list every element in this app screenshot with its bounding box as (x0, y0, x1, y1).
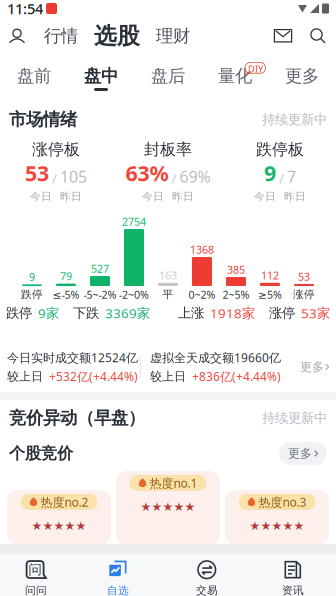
staticText: 9 (264, 159, 276, 187)
staticText: 更多 (285, 65, 319, 87)
button[interactable]: 盘前 (0, 55, 67, 97)
staticText: ★★★★★ (31, 519, 86, 533)
staticText: 79 (60, 269, 72, 283)
staticText: 持续更新中 (262, 410, 327, 426)
staticText: 昨日 (172, 190, 194, 203)
staticText: 较上日 (7, 369, 43, 384)
staticText: DIY (248, 63, 263, 75)
staticText: ★★★★★ (140, 500, 195, 514)
staticText: 385 (227, 262, 245, 277)
button[interactable]: Messages (270, 23, 296, 49)
staticText: 今日 (254, 190, 276, 203)
staticText: 527 (91, 261, 109, 276)
staticText: ≤-5% (52, 287, 79, 302)
staticText: 更多 (288, 446, 312, 461)
staticText: 理财 (156, 25, 190, 47)
staticText: 交易 (196, 584, 218, 596)
button[interactable]: 交易 (164, 554, 250, 596)
staticText: 问问 (25, 584, 47, 596)
staticText: 热度no.1 (149, 475, 197, 491)
staticText: 量化 (218, 65, 252, 87)
staticText: 盘前 (17, 65, 51, 87)
staticText: 2754 (122, 214, 146, 229)
staticText: / (168, 169, 179, 187)
staticText: 虚拟全天成交额19660亿 (150, 350, 281, 365)
staticText: -5~-2% (83, 287, 116, 302)
staticText: 更多 (300, 360, 324, 374)
staticText: +836亿(+4.44%) (192, 368, 281, 384)
staticText: 封板率 (144, 140, 192, 159)
staticText: 持续更新中 (262, 111, 327, 128)
button[interactable]: 理财 (156, 23, 190, 49)
staticText: 53 (298, 269, 310, 284)
staticText: 9家 (32, 304, 59, 322)
button[interactable]: 更多 (268, 55, 335, 97)
button[interactable]: 选股 (94, 23, 140, 49)
staticText: 今日 (142, 190, 164, 203)
staticText: 资讯 (282, 584, 304, 596)
staticText: 选股 (94, 22, 140, 50)
staticText: 竞价异动（早盘） (9, 407, 145, 429)
staticText: +532亿(+4.44%) (49, 368, 138, 384)
staticText: 跌停 (6, 305, 32, 321)
staticText: 9 (29, 270, 35, 284)
button[interactable]: 热度no.3 (225, 490, 329, 544)
staticText: 53家 (295, 304, 330, 322)
button[interactable]: 量化 (201, 55, 268, 97)
staticText: 今日实时成交额12524亿 (7, 350, 138, 365)
button[interactable]: 热度no.2 (7, 490, 111, 544)
staticText: 热度no.3 (258, 494, 306, 510)
staticText: 53 (25, 159, 49, 187)
staticText: 市场情绪 (9, 109, 77, 130)
button[interactable]: 更多 (279, 442, 327, 465)
button[interactable]: 自选 (72, 554, 164, 596)
button[interactable]: 问 (0, 554, 72, 596)
staticText: 行情 (44, 25, 78, 47)
staticText: ≥5% (258, 287, 282, 302)
staticText: 昨日 (60, 190, 82, 203)
staticText: 涨停 (293, 288, 315, 301)
button[interactable]: 更多 (300, 360, 329, 374)
staticText: 112 (261, 268, 279, 282)
staticText: 0~2% (188, 287, 215, 302)
button[interactable]: 盘中 (67, 55, 134, 97)
staticText: 盘中 (84, 65, 118, 87)
staticText: 11:54 (7, 0, 43, 18)
staticText: 7 (287, 166, 296, 187)
staticText: 69% (179, 166, 210, 187)
staticText: -2~0% (119, 287, 149, 302)
button[interactable]: Search (306, 23, 330, 49)
staticText: 平 (162, 288, 173, 301)
staticText: 跌停板 (256, 140, 304, 159)
staticText: 163 (159, 268, 177, 282)
staticText: 较上日 (150, 369, 186, 384)
button[interactable]: Profile (3, 23, 31, 49)
staticText: 上涨 (178, 305, 204, 321)
staticText: 2~5% (222, 287, 249, 302)
staticText: 个股竞价 (9, 444, 73, 463)
staticText: 热度no.2 (40, 494, 88, 510)
staticText: / (49, 169, 60, 187)
staticText: ★★★★★ (249, 519, 304, 533)
staticText: 问 (28, 561, 41, 578)
staticText: 1918家 (204, 304, 255, 322)
button[interactable]: 资讯 (250, 554, 336, 596)
staticText: 105 (60, 166, 87, 187)
staticText: 涨停 (269, 305, 295, 321)
staticText: 涨停板 (32, 140, 80, 159)
staticText: 63% (125, 159, 168, 187)
button[interactable]: 热度no.1 (116, 471, 220, 544)
staticText: 1368 (190, 242, 214, 257)
staticText: 昨日 (284, 190, 306, 203)
button[interactable]: 行情 (44, 23, 78, 49)
staticText: 今日 (30, 190, 52, 203)
staticText: 自选 (107, 584, 129, 596)
staticText: 下跌 (73, 305, 99, 321)
staticText: / (276, 169, 287, 187)
staticText: 3369家 (99, 304, 150, 322)
staticText: 盘后 (151, 65, 185, 87)
button[interactable]: 盘后 (134, 55, 201, 97)
staticText: 跌停 (21, 288, 43, 301)
